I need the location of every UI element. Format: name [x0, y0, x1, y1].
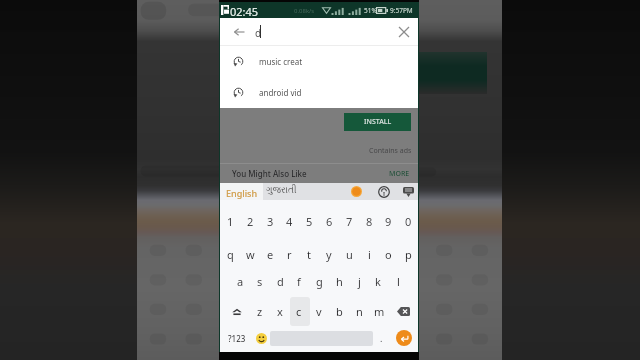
- staticText: j: [358, 274, 361, 289]
- staticText: d: [255, 26, 262, 40]
- staticText: English: [226, 187, 258, 199]
- button[interactable]: 6: [319, 206, 339, 236]
- button[interactable]: 7: [339, 206, 359, 236]
- button[interactable]: r: [279, 239, 299, 269]
- button[interactable]: 0: [398, 206, 418, 236]
- button[interactable]: Enter: [390, 324, 417, 352]
- button[interactable]: You Might Also Like: [220, 164, 418, 183]
- staticText: z: [257, 304, 263, 319]
- staticText: r: [287, 247, 292, 262]
- staticText: f: [297, 274, 301, 289]
- button[interactable]: English: [226, 187, 258, 199]
- staticText: ગુજરાતી: [266, 186, 297, 195]
- staticText: q: [227, 247, 234, 262]
- button[interactable]: y: [319, 239, 339, 269]
- button[interactable]: o: [378, 239, 398, 269]
- button[interactable]: Back: [227, 18, 252, 45]
- button[interactable]: q: [220, 239, 240, 269]
- button[interactable]: Space: [269, 324, 374, 352]
- staticText: 1: [227, 214, 234, 229]
- button[interactable]: e: [260, 239, 280, 269]
- staticText: 4: [286, 214, 293, 229]
- button[interactable]: android vid: [220, 77, 418, 108]
- staticText: INSTALL: [364, 117, 392, 127]
- staticText: u: [346, 247, 353, 262]
- staticText: m: [374, 304, 385, 319]
- button[interactable]: j: [349, 267, 369, 296]
- button[interactable]: n: [349, 297, 369, 326]
- staticText: x: [277, 304, 283, 319]
- button[interactable]: ?123: [222, 324, 252, 352]
- staticText: y: [326, 247, 332, 262]
- button[interactable]: Clear search: [392, 18, 416, 45]
- staticText: o: [385, 247, 392, 262]
- button[interactable]: v: [309, 297, 329, 326]
- staticText: 51%: [364, 6, 377, 15]
- button[interactable]: Theme: [349, 184, 364, 199]
- button[interactable]: c: [289, 297, 309, 326]
- button[interactable]: a: [230, 267, 250, 296]
- staticText: 7: [346, 214, 353, 229]
- staticText: 8: [366, 214, 373, 229]
- button[interactable]: 3: [260, 206, 280, 236]
- button[interactable]: w: [240, 239, 260, 269]
- staticText: 02:45: [230, 4, 259, 19]
- button[interactable]: INSTALL: [344, 113, 411, 131]
- staticText: k: [375, 274, 381, 289]
- button[interactable]: Emoji: [250, 324, 272, 352]
- staticText: 3: [267, 214, 274, 229]
- button[interactable]: f: [289, 267, 309, 296]
- staticText: 0.08k/s: [294, 7, 315, 15]
- staticText: d: [277, 274, 284, 289]
- staticText: s: [257, 274, 263, 289]
- button[interactable]: 1: [220, 206, 240, 236]
- staticText: p: [405, 247, 412, 262]
- staticText: a: [237, 274, 244, 289]
- button[interactable]: u: [339, 239, 359, 269]
- button[interactable]: d: [270, 267, 290, 296]
- staticText: n: [356, 304, 363, 319]
- staticText: t: [307, 247, 311, 262]
- button[interactable]: 2: [240, 206, 260, 236]
- staticText: .: [380, 332, 383, 344]
- button[interactable]: l: [388, 267, 408, 296]
- button[interactable]: ગુજરાતી: [266, 186, 297, 195]
- button[interactable]: 4: [279, 206, 299, 236]
- button[interactable]: p: [398, 239, 418, 269]
- button[interactable]: .: [373, 324, 389, 352]
- staticText: b: [336, 304, 343, 319]
- button[interactable]: music creat: [220, 46, 418, 77]
- button[interactable]: Shift: [224, 297, 250, 326]
- button[interactable]: x: [270, 297, 290, 326]
- staticText: ?123: [228, 333, 246, 344]
- staticText: e: [267, 247, 274, 262]
- button[interactable]: k: [368, 267, 388, 296]
- staticText: 5: [306, 214, 313, 229]
- staticText: 0: [405, 214, 412, 229]
- button[interactable]: 5: [299, 206, 319, 236]
- button[interactable]: Clipboard: [401, 184, 416, 199]
- button[interactable]: 9: [378, 206, 398, 236]
- staticText: MORE: [389, 169, 410, 179]
- button[interactable]: Help: [376, 184, 391, 199]
- staticText: You Might Also Like: [232, 168, 307, 179]
- staticText: v: [316, 304, 322, 319]
- button[interactable]: t: [299, 239, 319, 269]
- staticText: 6: [326, 214, 333, 229]
- staticText: 9: [385, 214, 392, 229]
- staticText: c: [296, 304, 302, 319]
- button[interactable]: b: [329, 297, 349, 326]
- button[interactable]: 8: [359, 206, 379, 236]
- button[interactable]: z: [250, 297, 270, 326]
- button[interactable]: g: [309, 267, 329, 296]
- staticText: 9:57PM: [390, 6, 413, 15]
- staticText: 2: [247, 214, 254, 229]
- button[interactable]: Backspace: [390, 297, 416, 326]
- staticText: music creat: [259, 56, 303, 67]
- button[interactable]: m: [369, 297, 389, 326]
- staticText: android vid: [259, 87, 302, 98]
- button[interactable]: h: [329, 267, 349, 296]
- button[interactable]: s: [250, 267, 270, 296]
- button[interactable]: i: [359, 239, 379, 269]
- button[interactable]: Back: [220, 18, 418, 45]
